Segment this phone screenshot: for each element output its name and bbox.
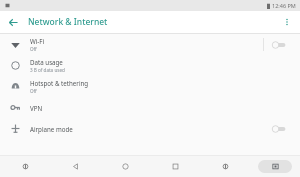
staticText: Wi‑Fi [30,37,45,45]
staticText: Data usage [30,58,63,66]
button[interactable]: VPN [0,97,300,118]
button[interactable]: Airplane mode toggle [272,122,290,136]
staticText: Off [30,46,37,52]
button[interactable]: Back [4,13,22,31]
button[interactable]: Back [50,156,100,177]
button[interactable]: Assistant [0,156,50,177]
staticText: VPN [30,104,43,112]
button[interactable]: Hotspot & tethering [0,76,300,97]
staticText: Network & Internet [28,16,108,28]
staticText: 12:46 PM [272,2,296,9]
button[interactable]: Screenshot [200,156,250,177]
button[interactable]: Wi‑Fi toggle [272,38,290,52]
staticText: Hotspot & tethering [30,79,89,87]
button[interactable]: Keyboard [258,160,292,173]
staticText: Airplane mode [30,125,73,133]
button[interactable]: Home [100,156,150,177]
button[interactable]: Recents [150,156,200,177]
staticText: Off [30,88,37,94]
button[interactable]: Data usage [0,55,300,76]
button[interactable]: More options [278,13,296,31]
button[interactable]: Airplane mode [0,118,300,139]
button[interactable]: Wi‑Fi [0,34,300,55]
staticText: 3 B of data used [30,67,65,73]
